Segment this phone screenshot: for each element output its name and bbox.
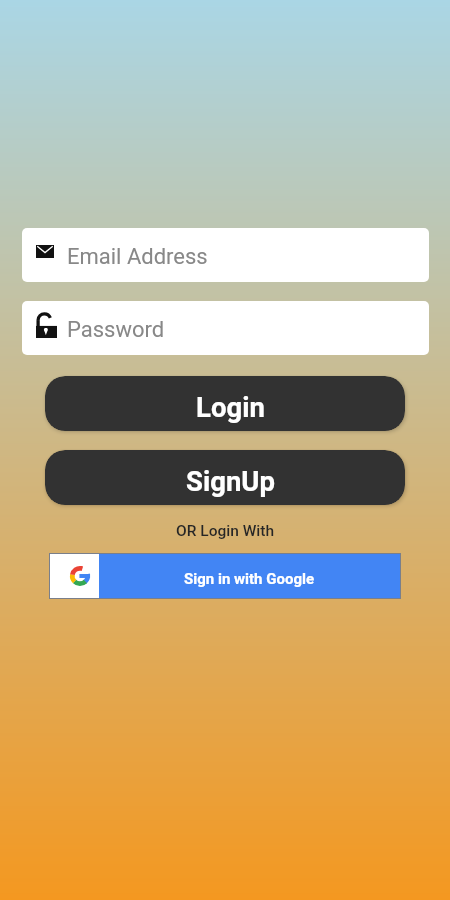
staticText: Login bbox=[196, 391, 265, 423]
button[interactable]: SignUp bbox=[45, 450, 405, 505]
other: Password bbox=[36, 315, 57, 338]
staticText: Email Address bbox=[67, 244, 208, 270]
button[interactable]: Login bbox=[45, 376, 405, 431]
other: Google bbox=[70, 566, 90, 586]
staticText: SignUp bbox=[186, 465, 275, 497]
staticText: Password bbox=[67, 317, 165, 343]
staticText: OR Login With bbox=[176, 522, 275, 540]
button[interactable]: Google bbox=[49, 553, 401, 599]
button[interactable]: Email bbox=[22, 228, 429, 282]
other: Email bbox=[36, 245, 54, 258]
staticText: Sign in with Google bbox=[184, 570, 315, 588]
button[interactable]: Password bbox=[22, 301, 429, 355]
